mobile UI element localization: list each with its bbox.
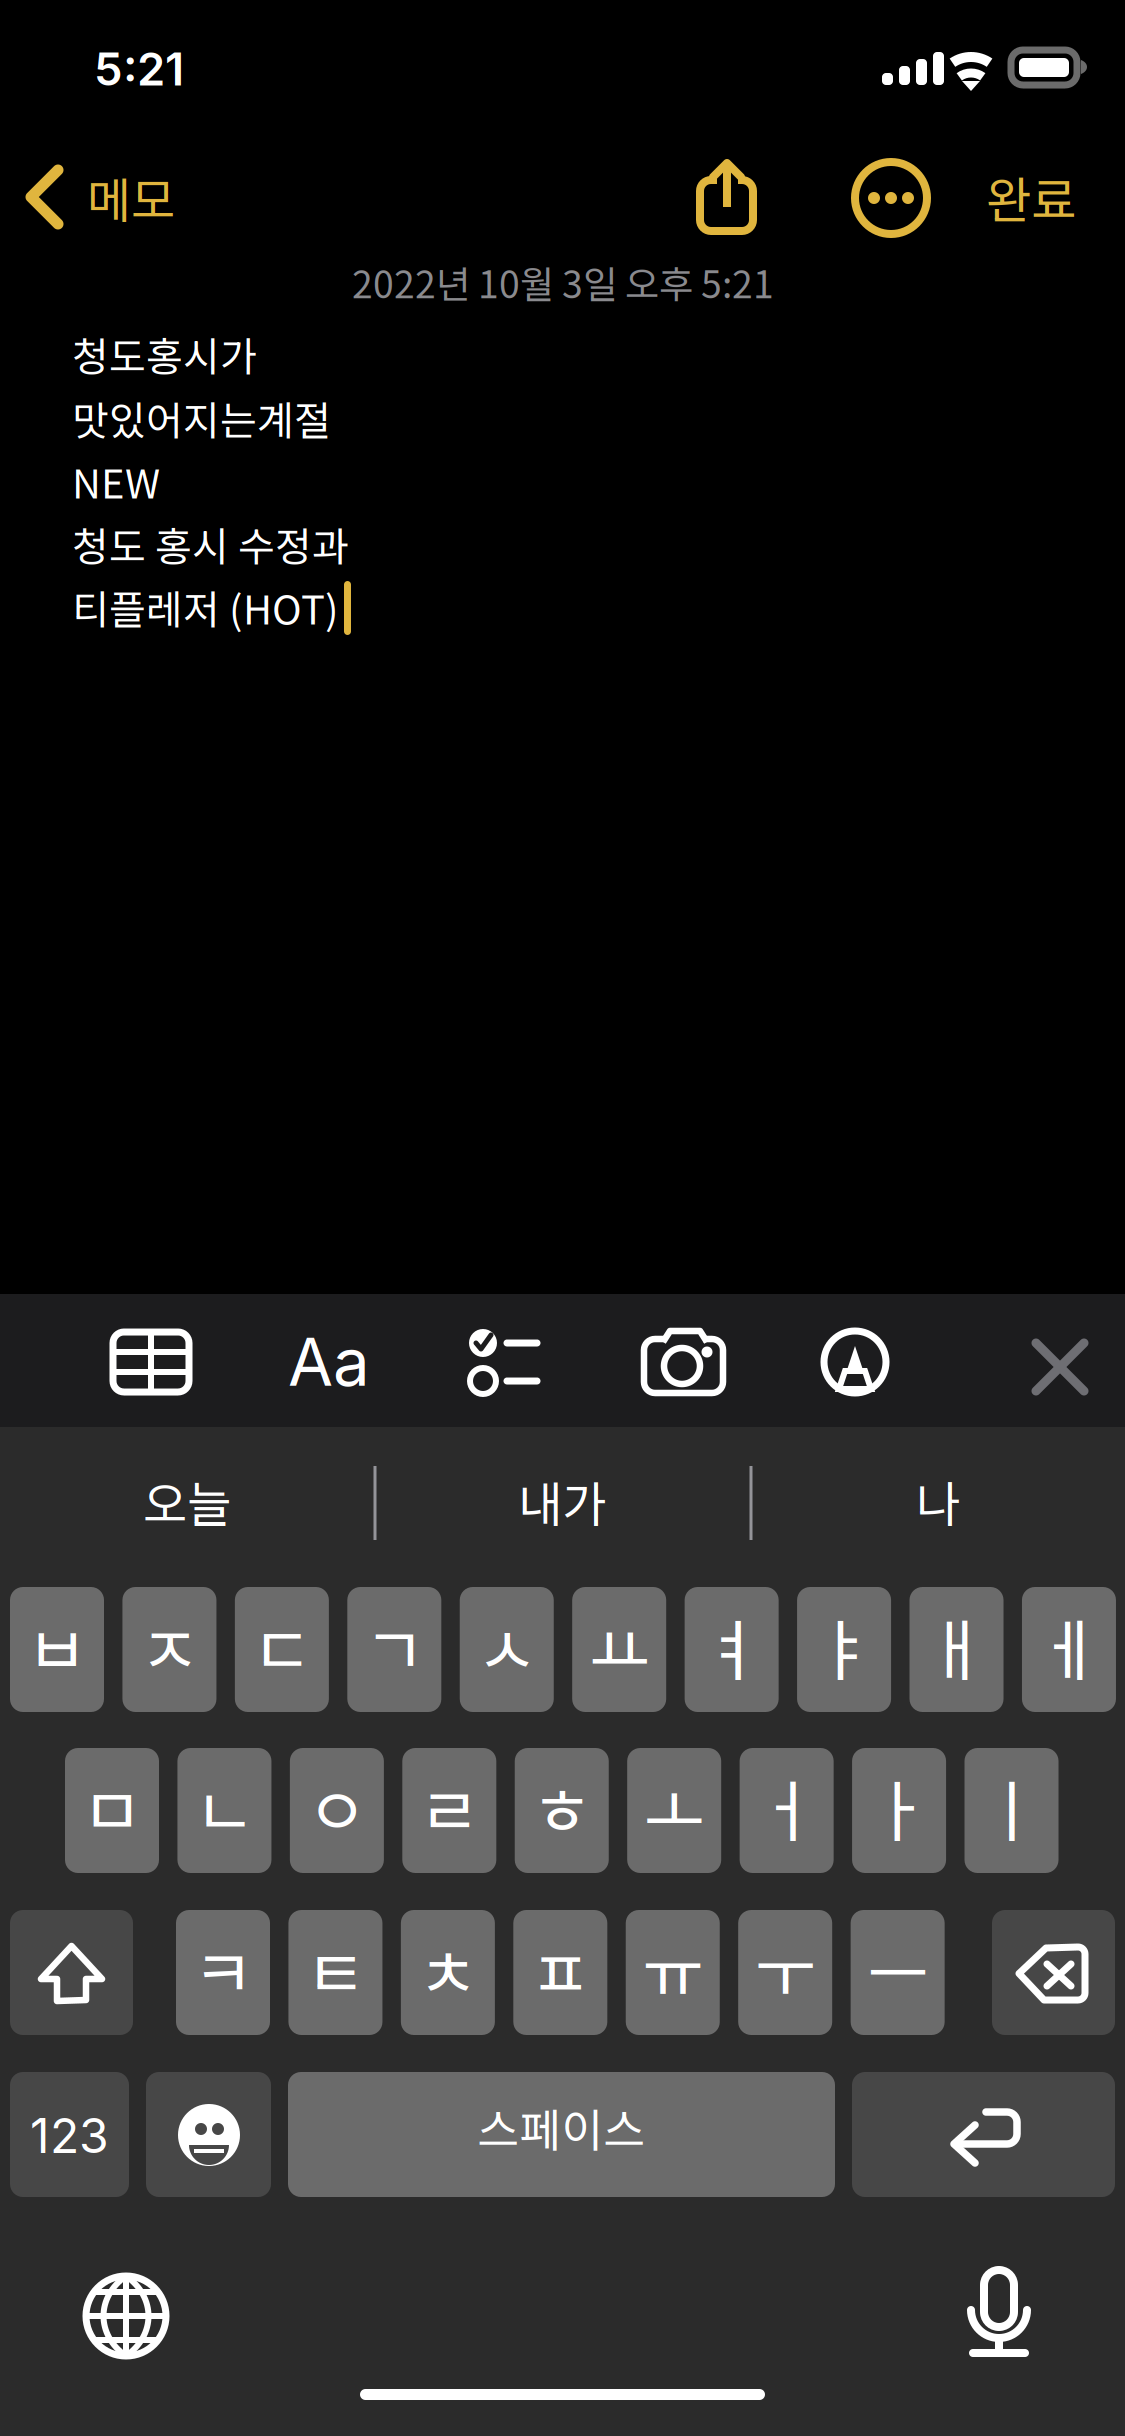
- staticText: 5:21: [94, 42, 184, 96]
- staticText: ㄹ: [419, 1759, 480, 1855]
- staticText: ㅈ: [139, 1598, 200, 1694]
- button[interactable]: ㅅ: [0, 0, 1125, 2436]
- button[interactable]: 내가: [0, 0, 1125, 2436]
- staticText: ㅎ: [531, 1759, 592, 1855]
- staticText: ㅁ: [81, 1759, 142, 1855]
- staticText: Aa: [288, 1322, 370, 1401]
- staticText: 완료: [986, 161, 1076, 233]
- button[interactable]: Delete: [0, 0, 1125, 2436]
- staticText: 청도홍시가: [72, 325, 257, 383]
- button[interactable]: 오늘: [0, 0, 1125, 2436]
- staticText: 2022년 10월 3일 오후 5:21: [352, 255, 774, 309]
- button[interactable]: ㅔ: [0, 0, 1125, 2436]
- button[interactable]: 123: [0, 0, 1125, 2436]
- button[interactable]: ㅗ: [0, 0, 1125, 2436]
- button[interactable]: ㄱ: [0, 0, 1125, 2436]
- button[interactable]: ㅌ: [0, 0, 1125, 2436]
- staticText: ㅑ: [814, 1598, 875, 1694]
- button[interactable]: ㅜ: [0, 0, 1125, 2436]
- button[interactable]: Close: [0, 0, 1125, 2436]
- staticText: ㅂ: [26, 1598, 87, 1694]
- staticText: ㅅ: [476, 1598, 537, 1694]
- button[interactable]: ㅐ: [0, 0, 1125, 2436]
- staticText: ㅡ: [867, 1921, 928, 2017]
- button[interactable]: ㅊ: [0, 0, 1125, 2436]
- button[interactable]: Checklist: [0, 0, 1125, 2436]
- staticText: 메모: [87, 162, 175, 232]
- button[interactable]: ㅇ: [0, 0, 1125, 2436]
- button[interactable]: ㅁ: [0, 0, 1125, 2436]
- button[interactable]: Shift: [0, 0, 1125, 2436]
- staticText: ㅓ: [756, 1759, 817, 1855]
- button[interactable]: ㅓ: [0, 0, 1125, 2436]
- staticText: ㅗ: [644, 1759, 705, 1855]
- button[interactable]: ㅂ: [0, 0, 1125, 2436]
- staticText: 내가: [518, 1466, 606, 1536]
- staticText: 나: [916, 1466, 960, 1536]
- button[interactable]: Format: [0, 0, 1125, 2436]
- button[interactable]: ㅏ: [0, 0, 1125, 2436]
- staticText: ㅏ: [869, 1759, 930, 1855]
- staticText: ㅊ: [417, 1921, 478, 2017]
- button[interactable]: Switch keyboard: [0, 0, 1125, 2436]
- button[interactable]: ㅣ: [0, 0, 1125, 2436]
- staticText: ㅛ: [589, 1598, 650, 1694]
- staticText: ㄷ: [251, 1598, 312, 1694]
- button[interactable]: ㅕ: [0, 0, 1125, 2436]
- staticText: NEW: [72, 452, 160, 510]
- staticText: ㅕ: [701, 1598, 762, 1694]
- staticText: 티플레저 (HOT): [72, 578, 339, 636]
- button[interactable]: Dictate: [0, 0, 1125, 2436]
- button[interactable]: ㅋ: [0, 0, 1125, 2436]
- staticText: ㅜ: [755, 1921, 816, 2017]
- button[interactable]: 메모: [0, 0, 1125, 2436]
- staticText: ㅠ: [642, 1921, 703, 2017]
- button[interactable]: ㅡ: [0, 0, 1125, 2436]
- staticText: ㄱ: [364, 1598, 425, 1694]
- button[interactable]: Emoji: [0, 0, 1125, 2436]
- button[interactable]: ㅍ: [0, 0, 1125, 2436]
- staticText: ㅐ: [926, 1598, 987, 1694]
- button[interactable]: Table: [0, 0, 1125, 2436]
- staticText: ㅌ: [305, 1921, 366, 2017]
- button[interactable]: 완료: [0, 0, 1125, 2436]
- staticText: ㄴ: [194, 1759, 255, 1855]
- button[interactable]: Markup: [0, 0, 1125, 2436]
- staticText: ㅔ: [1038, 1598, 1099, 1694]
- button[interactable]: ㄴ: [0, 0, 1125, 2436]
- staticText: ㅋ: [192, 1921, 253, 2017]
- button[interactable]: ㅛ: [0, 0, 1125, 2436]
- button[interactable]: ㅎ: [0, 0, 1125, 2436]
- staticText: 맛있어지는계절: [72, 389, 331, 447]
- button[interactable]: ㅑ: [0, 0, 1125, 2436]
- staticText: 오늘: [143, 1466, 231, 1536]
- staticText: 청도 홍시 수정과: [72, 515, 349, 573]
- button[interactable]: ㅈ: [0, 0, 1125, 2436]
- button[interactable]: ㄹ: [0, 0, 1125, 2436]
- button[interactable]: More: [0, 0, 1125, 2436]
- button[interactable]: Camera: [0, 0, 1125, 2436]
- staticText: ㅍ: [530, 1921, 591, 2017]
- staticText: ㅇ: [306, 1759, 367, 1855]
- button[interactable]: Share: [0, 0, 1125, 2436]
- staticText: ㅣ: [981, 1759, 1042, 1855]
- button[interactable]: 스페이스: [0, 0, 1125, 2436]
- button[interactable]: Return: [0, 0, 1125, 2436]
- staticText: 스페이스: [477, 2094, 645, 2160]
- button[interactable]: 나: [0, 0, 1125, 2436]
- button[interactable]: ㄷ: [0, 0, 1125, 2436]
- staticText: 123: [30, 2106, 109, 2165]
- button[interactable]: ㅠ: [0, 0, 1125, 2436]
